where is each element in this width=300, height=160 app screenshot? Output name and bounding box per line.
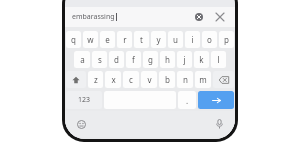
button[interactable]: Clear text [192,10,206,24]
button[interactable]: f [126,51,141,68]
button[interactable]: i [185,31,200,48]
button[interactable]: b [159,71,175,88]
button[interactable]: n [177,71,193,88]
staticText: z [94,74,98,85]
button[interactable]: Backspace [213,71,234,88]
button[interactable]: m [195,71,211,88]
staticText: b [165,74,170,85]
button[interactable]: Search [198,91,234,109]
staticText: x [111,74,116,85]
staticText: e [105,34,110,45]
button[interactable]: o [202,31,217,48]
button[interactable]: Emoji [74,117,88,131]
button[interactable]: s [92,51,107,68]
button[interactable]: l [211,51,226,68]
staticText: w [87,34,94,45]
button[interactable]: e [100,31,115,48]
staticText: s [98,54,102,65]
button[interactable]: a [74,51,90,68]
staticText: l [217,54,220,65]
button[interactable]: . [178,91,196,109]
button[interactable]: v [141,71,157,88]
button[interactable]: w [83,31,98,48]
staticText: o [207,34,212,45]
staticText: y [156,34,161,45]
button[interactable]: u [168,31,183,48]
button[interactable]: c [123,71,139,88]
button[interactable]: r [117,31,132,48]
staticText: j [183,54,186,65]
staticText: p [224,34,229,45]
button[interactable]: x [105,71,121,88]
button[interactable]: Voice input [212,117,226,131]
staticText: 123 [78,95,91,105]
staticText: f [132,54,135,65]
staticText: g [148,54,153,65]
button[interactable]: embarassing [65,7,235,27]
staticText: d [114,54,119,65]
staticText: a [80,54,85,65]
staticText: v [147,74,152,85]
button[interactable]: 123 [66,91,102,109]
button[interactable]: t [134,31,149,48]
button[interactable]: p [219,31,234,48]
button[interactable]: Shift [66,71,86,88]
button[interactable]: h [160,51,175,68]
button[interactable]: q [66,31,81,48]
staticText: i [191,34,194,45]
staticText: t [140,34,143,45]
staticText: h [165,54,170,65]
button[interactable]: y [151,31,166,48]
staticText: c [129,74,133,85]
button[interactable]: j [177,51,192,68]
button[interactable]: Close [212,9,228,25]
staticText: m [199,74,207,85]
staticText: q [71,34,76,45]
staticText: . [186,95,189,106]
staticText: n [183,74,188,85]
staticText: embarassing [72,12,115,22]
button[interactable]: g [143,51,158,68]
button[interactable]: z [88,71,103,88]
staticText: r [123,34,127,45]
staticText: k [199,54,204,65]
button[interactable]: k [194,51,209,68]
button[interactable]: d [109,51,124,68]
staticText: u [173,34,178,45]
